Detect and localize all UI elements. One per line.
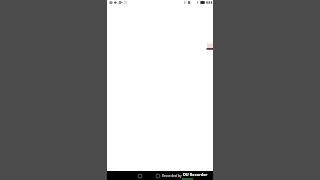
staticText: DU Recorder xyxy=(183,172,208,177)
button[interactable]: Recents xyxy=(153,171,162,180)
staticText: Recorded by xyxy=(162,173,182,177)
button[interactable]: Menu xyxy=(171,171,180,180)
button[interactable]: Notification xyxy=(205,42,213,50)
button[interactable]: Home xyxy=(135,171,144,180)
